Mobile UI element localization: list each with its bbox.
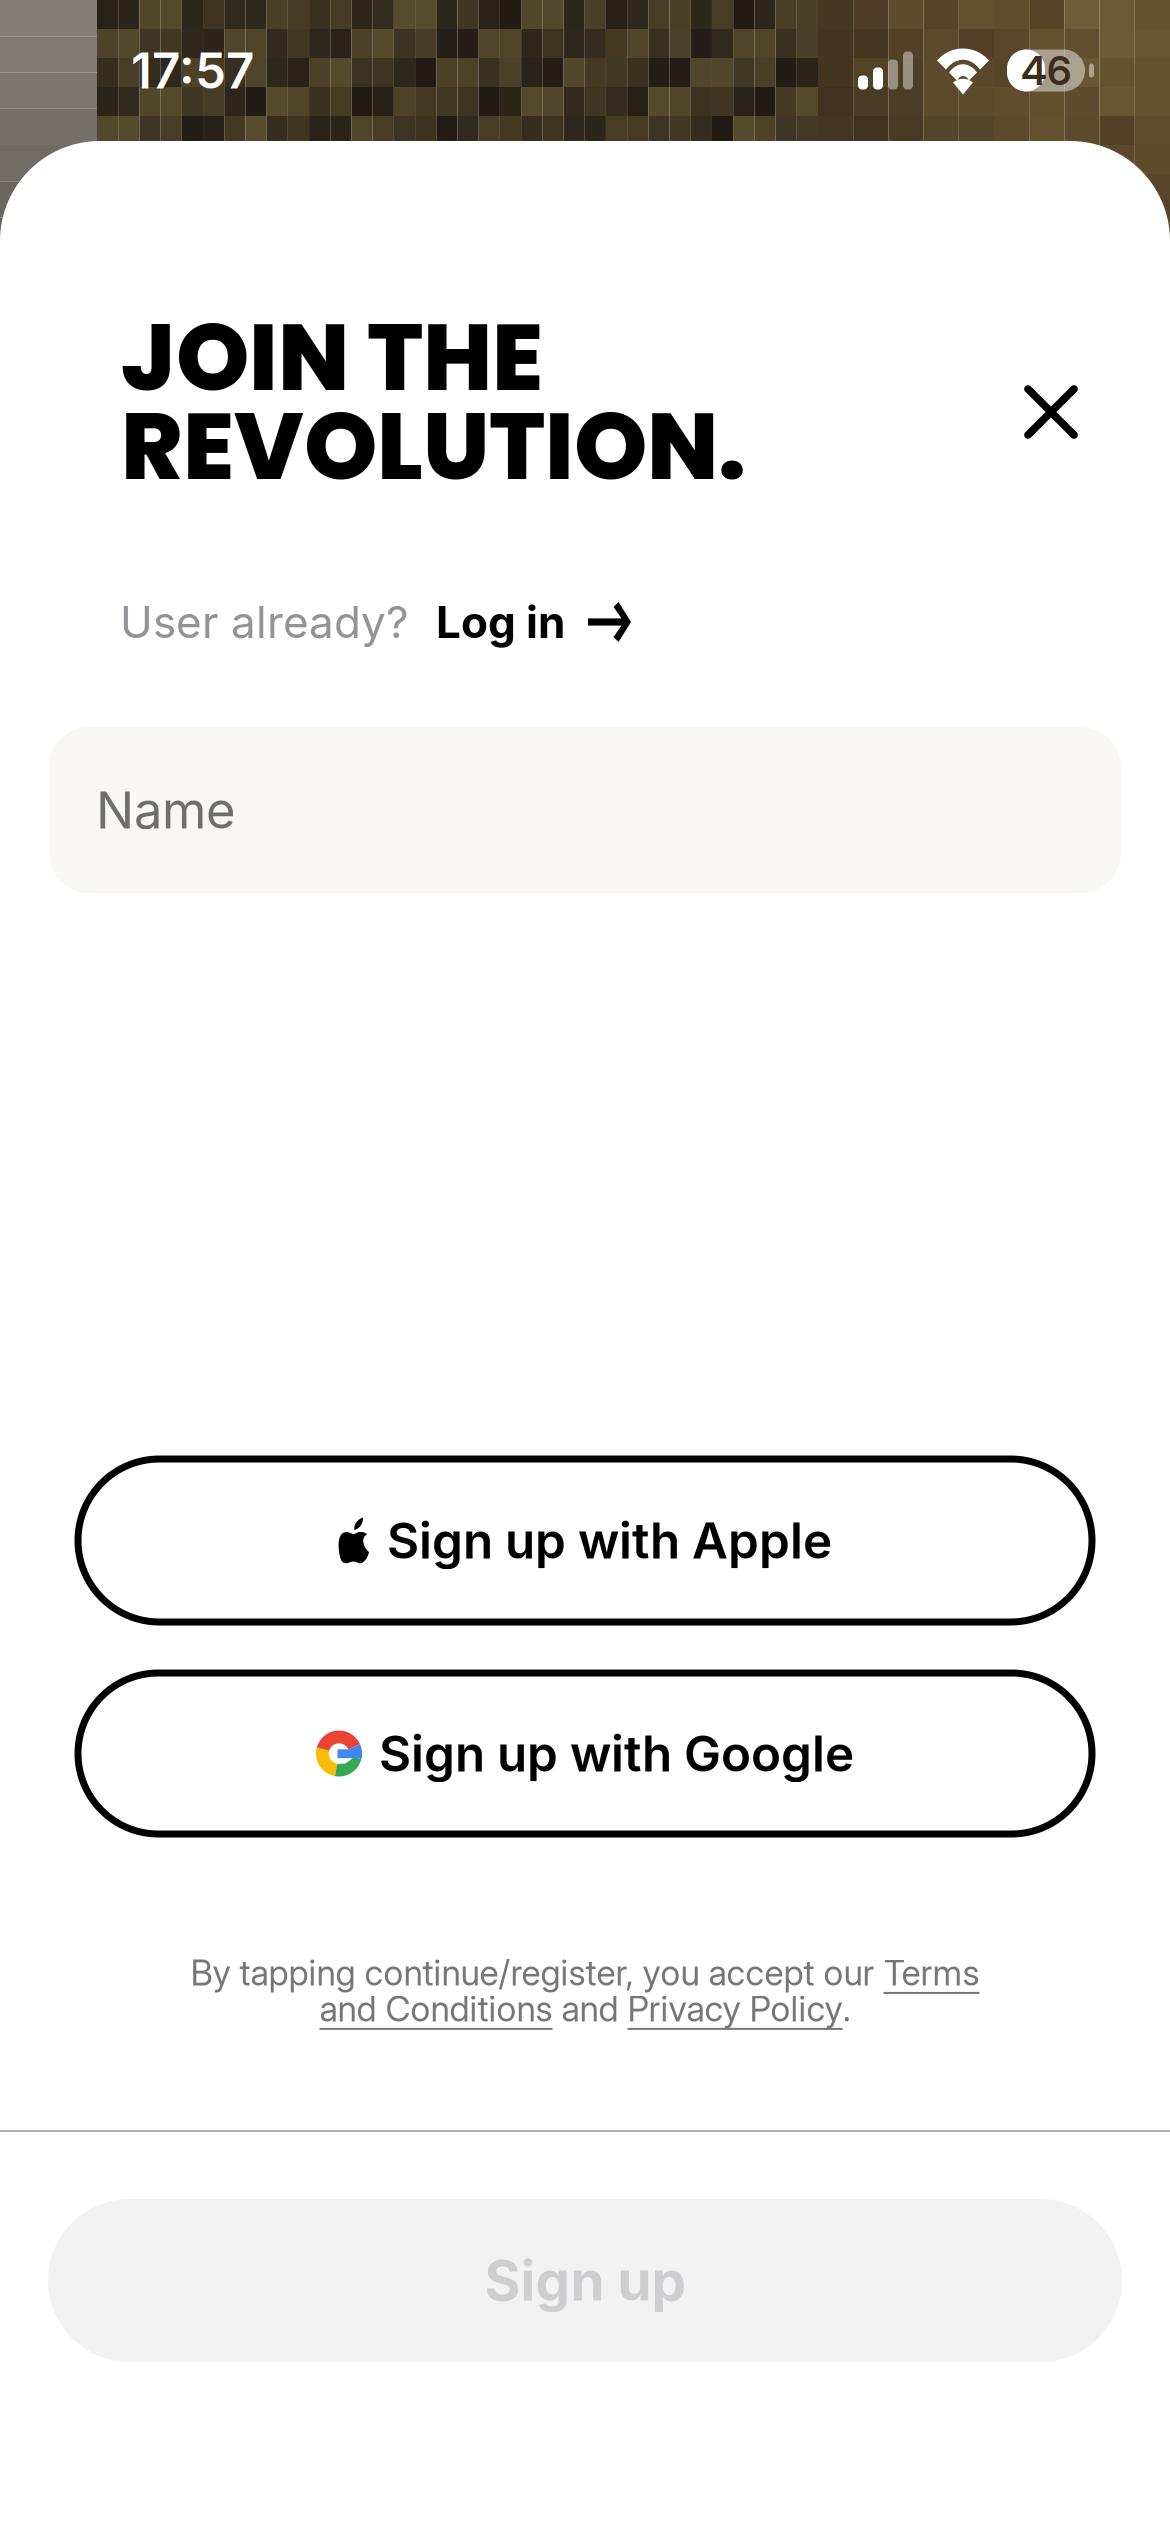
button[interactable]: and Conditions — [319, 1988, 552, 2030]
staticText: 17:57 — [131, 41, 254, 100]
staticText: and Conditions — [319, 1988, 552, 2030]
staticText: Sign up with Google — [379, 1724, 854, 1783]
staticText: Privacy Policy — [627, 1988, 842, 2030]
staticText: Sign up — [484, 2247, 685, 2313]
button[interactable]: Sign up with Google — [78, 1673, 1092, 1834]
staticText: Log in — [436, 595, 565, 649]
staticText: By tapping continue/register, you accept… — [190, 1952, 883, 1994]
staticText: JOIN THE — [121, 292, 543, 423]
staticText: Name — [96, 779, 236, 841]
staticText: Terms — [883, 1952, 979, 1994]
staticText: Sign up with Apple — [387, 1511, 832, 1570]
staticText: . — [842, 1988, 850, 2030]
staticText: and — [552, 1988, 627, 2030]
staticText: 46 — [1021, 46, 1071, 95]
button[interactable]: Privacy Policy — [627, 1988, 842, 2030]
staticText: REVOLUTION. — [121, 381, 746, 512]
staticText: User already? — [120, 595, 408, 649]
button[interactable]: Sign up — [48, 2199, 1122, 2362]
button[interactable]: Sign up with Apple — [78, 1459, 1092, 1622]
button[interactable]: User already? — [120, 592, 631, 652]
button[interactable]: Close — [1013, 374, 1089, 450]
button[interactable]: Name — [49, 727, 1121, 893]
button[interactable]: Terms — [883, 1952, 979, 1994]
